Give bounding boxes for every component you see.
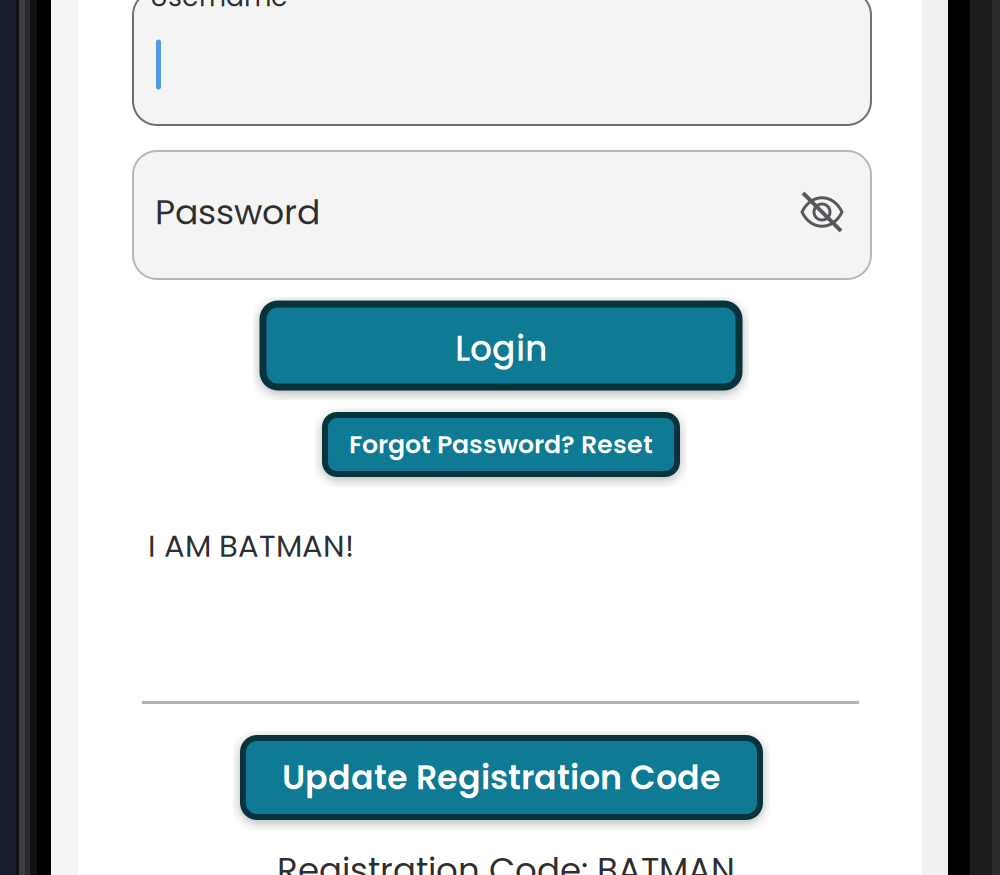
button[interactable]: Update Registration Code bbox=[243, 738, 760, 817]
staticText: Username bbox=[150, 0, 288, 16]
staticText: I AM BATMAN! bbox=[148, 524, 354, 567]
button[interactable]: Show password bbox=[800, 191, 844, 233]
button[interactable]: Login bbox=[263, 304, 739, 387]
button[interactable]: Forgot Password? Reset bbox=[325, 415, 677, 474]
staticText: Update Registration Code bbox=[282, 754, 721, 801]
staticText: Password bbox=[155, 188, 320, 236]
staticText: Login bbox=[455, 324, 547, 373]
staticText: Registration Code: BATMAN bbox=[277, 846, 735, 875]
staticText: Forgot Password? Reset bbox=[349, 427, 653, 462]
